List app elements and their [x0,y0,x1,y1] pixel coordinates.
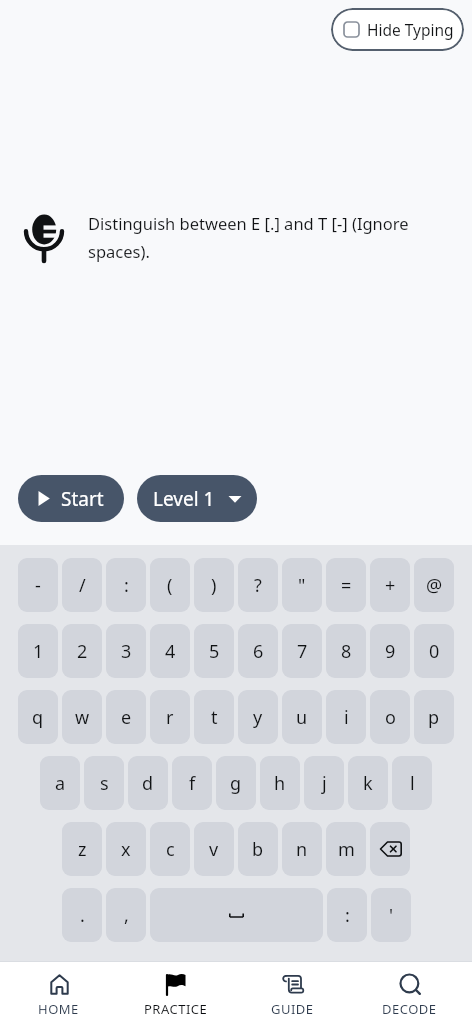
staticText: Start [61,486,104,512]
staticText: ) [211,573,217,598]
staticText: 6 [253,639,264,664]
staticText: c [166,837,175,862]
staticText: v [209,837,219,862]
staticText: m [338,837,355,862]
staticText: DECODE [382,1000,437,1018]
staticText: Level 1 [153,486,215,512]
staticText: 2 [77,639,88,664]
staticText: 4 [165,639,176,664]
staticText: ( [167,573,173,598]
staticText: t [211,705,218,730]
staticText: x [121,837,131,862]
staticText: ' [389,903,394,928]
staticText: = [341,573,352,598]
staticText: GUIDE [271,1000,314,1018]
staticText: . [80,903,85,928]
staticText: 9 [385,639,396,664]
staticText: i [344,705,349,730]
staticText: " [298,573,306,598]
staticText: 0 [429,639,440,664]
staticText: 7 [297,639,308,664]
staticText: : [345,903,350,928]
staticText: 8 [341,639,352,664]
staticText: s [100,771,109,796]
staticText: HOME [38,1000,79,1018]
staticText: f [189,771,196,796]
staticText: 1 [33,639,44,664]
staticText: y [253,705,263,730]
staticText: - [35,573,41,598]
staticText: e [121,705,132,730]
staticText: r [166,705,174,730]
staticText: u [296,705,308,730]
staticText: @ [426,573,443,598]
staticText: p [428,705,440,730]
staticText: q [32,705,44,730]
staticText: l [410,771,415,796]
staticText: k [363,771,373,796]
staticText: Distinguish between E [.] and T [-] (Ign… [88,212,409,263]
staticText: g [230,771,242,796]
staticText: o [385,705,396,730]
staticText: b [252,837,264,862]
staticText: j [322,771,327,796]
staticText: a [55,771,66,796]
staticText: h [274,771,286,796]
staticText: 3 [121,639,132,664]
staticText: 5 [209,639,220,664]
staticText: ? [254,573,262,598]
staticText: Hide Typing [367,19,454,40]
staticText: + [385,573,396,598]
staticText: PRACTICE [144,1000,208,1018]
staticText: : [124,573,129,598]
staticText: / [79,573,86,598]
staticText: n [296,837,308,862]
staticText: w [75,705,90,730]
staticText: z [78,837,87,862]
staticText: , [124,903,129,928]
staticText: d [142,771,154,796]
